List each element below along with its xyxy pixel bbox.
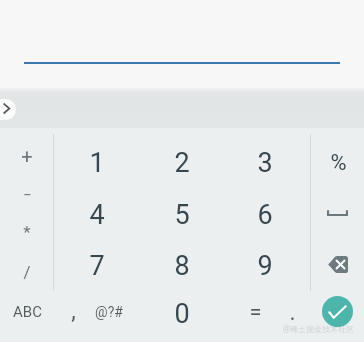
- staticText: 7: [89, 250, 105, 282]
- button[interactable]: ,: [46, 289, 100, 333]
- staticText: ABC: [13, 303, 42, 321]
- button[interactable]: 3: [238, 141, 292, 185]
- staticText: +: [21, 144, 33, 167]
- staticText: *: [23, 222, 31, 242]
- staticText: 9: [257, 250, 273, 282]
- button[interactable]: @?#: [82, 290, 136, 334]
- staticText: 5: [174, 199, 190, 231]
- button[interactable]: 4: [70, 193, 124, 237]
- staticText: %: [330, 150, 347, 176]
- staticText: −: [23, 186, 32, 204]
- button[interactable]: 9: [238, 244, 292, 288]
- staticText: 4: [89, 199, 105, 231]
- button[interactable]: 5: [155, 193, 209, 237]
- staticText: 8: [174, 250, 190, 282]
- staticText: 3: [257, 147, 273, 179]
- button[interactable]: =: [228, 290, 282, 334]
- button[interactable]: 0: [155, 292, 209, 336]
- button[interactable]: ABC: [0, 290, 54, 334]
- staticText: .: [289, 299, 296, 326]
- button[interactable]: Enter: [322, 296, 353, 327]
- button[interactable]: 7: [70, 244, 124, 288]
- button[interactable]: /: [0, 250, 54, 294]
- staticText: 0: [174, 298, 190, 330]
- staticText: ,: [71, 298, 76, 325]
- button[interactable]: Backspace: [312, 242, 362, 286]
- button[interactable]: 6: [238, 193, 292, 237]
- button[interactable]: *: [0, 210, 54, 254]
- staticText: @?#: [95, 304, 123, 320]
- staticText: =: [249, 299, 262, 325]
- button[interactable]: Expand suggestions: [0, 99, 16, 120]
- button[interactable]: −: [0, 173, 54, 217]
- button[interactable]: .: [265, 290, 319, 334]
- staticText: 2: [174, 147, 190, 179]
- staticText: @稀土掘金技术社区: [283, 323, 355, 334]
- button[interactable]: Space: [312, 191, 362, 235]
- button[interactable]: %: [311, 141, 364, 185]
- button[interactable]: 8: [155, 244, 209, 288]
- button[interactable]: 2: [155, 141, 209, 185]
- staticText: /: [23, 262, 31, 282]
- staticText: 6: [257, 199, 273, 231]
- button[interactable]: 1: [70, 141, 124, 185]
- staticText: 1: [89, 147, 105, 179]
- button[interactable]: +: [0, 133, 54, 177]
